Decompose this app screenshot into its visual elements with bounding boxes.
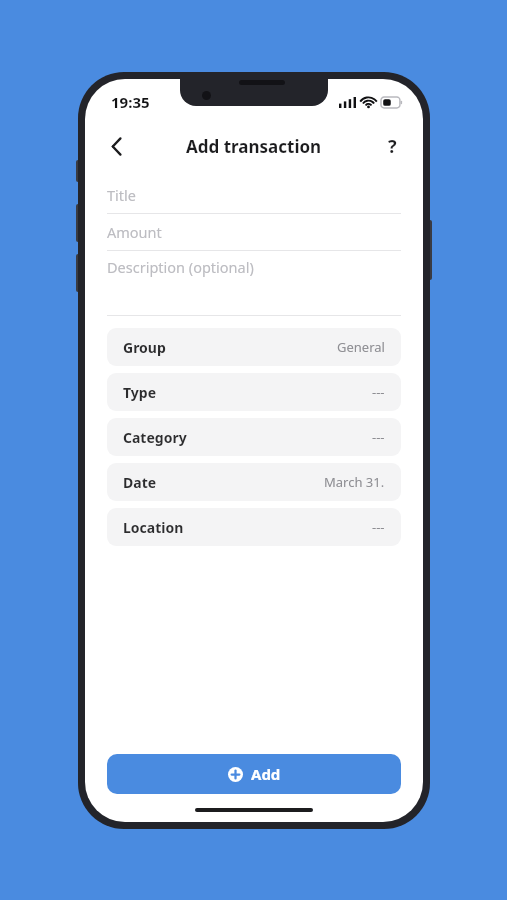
staticText: Add transaction [186,135,322,158]
staticText: 19:35 [111,92,150,112]
staticText: Group [123,338,166,357]
button[interactable]: Help [371,125,413,167]
button[interactable]: Add [107,754,401,794]
staticText: Date [123,473,157,492]
staticText: --- [372,428,385,446]
staticText: Title [107,185,136,205]
button[interactable]: Location [107,508,401,546]
staticText: --- [372,383,385,401]
staticText: Add [251,764,281,784]
staticText: Description (optional) [107,257,254,277]
staticText: ? [388,134,397,159]
staticText: General [337,338,385,356]
button[interactable]: Title [107,177,401,213]
button[interactable]: Type [107,373,401,411]
button[interactable]: Group [107,328,401,366]
button[interactable]: Back [95,125,137,167]
staticText: Amount [107,222,162,242]
staticText: Location [123,518,184,537]
button[interactable]: Description (optional) [107,251,401,315]
button[interactable]: Date [107,463,401,501]
staticText: Type [123,383,156,402]
button[interactable]: Category [107,418,401,456]
staticText: March 31. [324,473,385,491]
staticText: --- [372,518,385,536]
button[interactable]: Amount [107,214,401,250]
staticText: Category [123,428,187,447]
